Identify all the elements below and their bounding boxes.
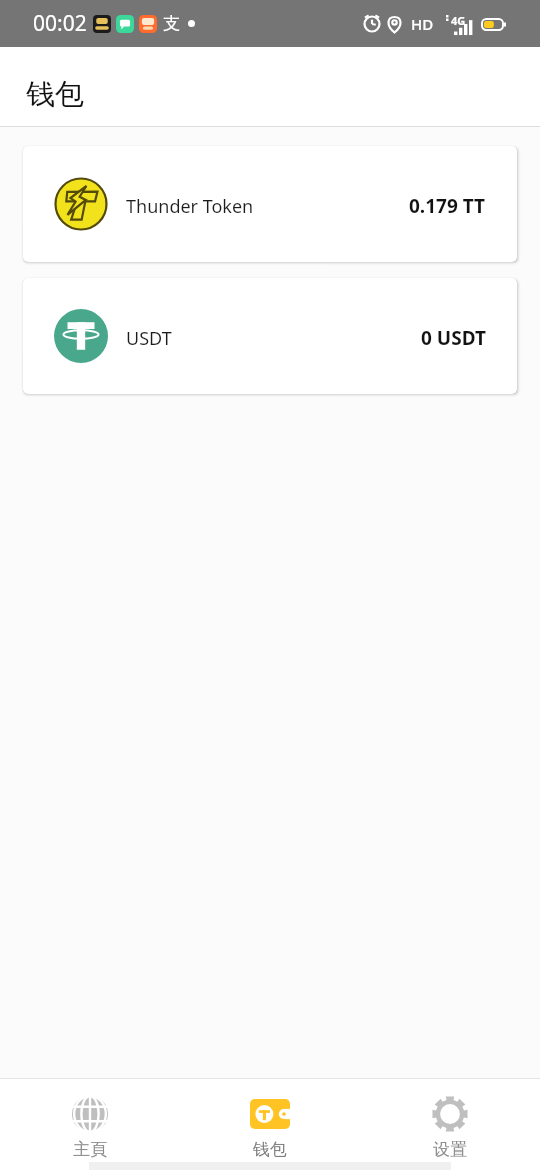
- staticText: 0 USDT: [421, 325, 486, 351]
- button[interactable]: Wallet: [180, 1079, 360, 1162]
- staticText: 0.179 TT: [409, 193, 486, 219]
- staticText: 00:02: [33, 9, 87, 38]
- button[interactable]: Home: [0, 1079, 180, 1162]
- staticText: HD: [411, 14, 434, 34]
- staticText: 钱包: [253, 1139, 287, 1160]
- button[interactable]: Thunder Token: [23, 146, 517, 262]
- staticText: Thunder Token: [126, 194, 254, 219]
- staticText: 设置: [433, 1139, 467, 1160]
- staticText: USDT: [126, 326, 172, 351]
- button[interactable]: Settings: [360, 1079, 540, 1162]
- button[interactable]: USDT: [23, 278, 517, 394]
- staticText: 主頁: [73, 1139, 107, 1160]
- staticText: 钱包: [26, 76, 84, 113]
- staticText: 4G: [451, 13, 466, 28]
- staticText: 支: [163, 13, 180, 34]
